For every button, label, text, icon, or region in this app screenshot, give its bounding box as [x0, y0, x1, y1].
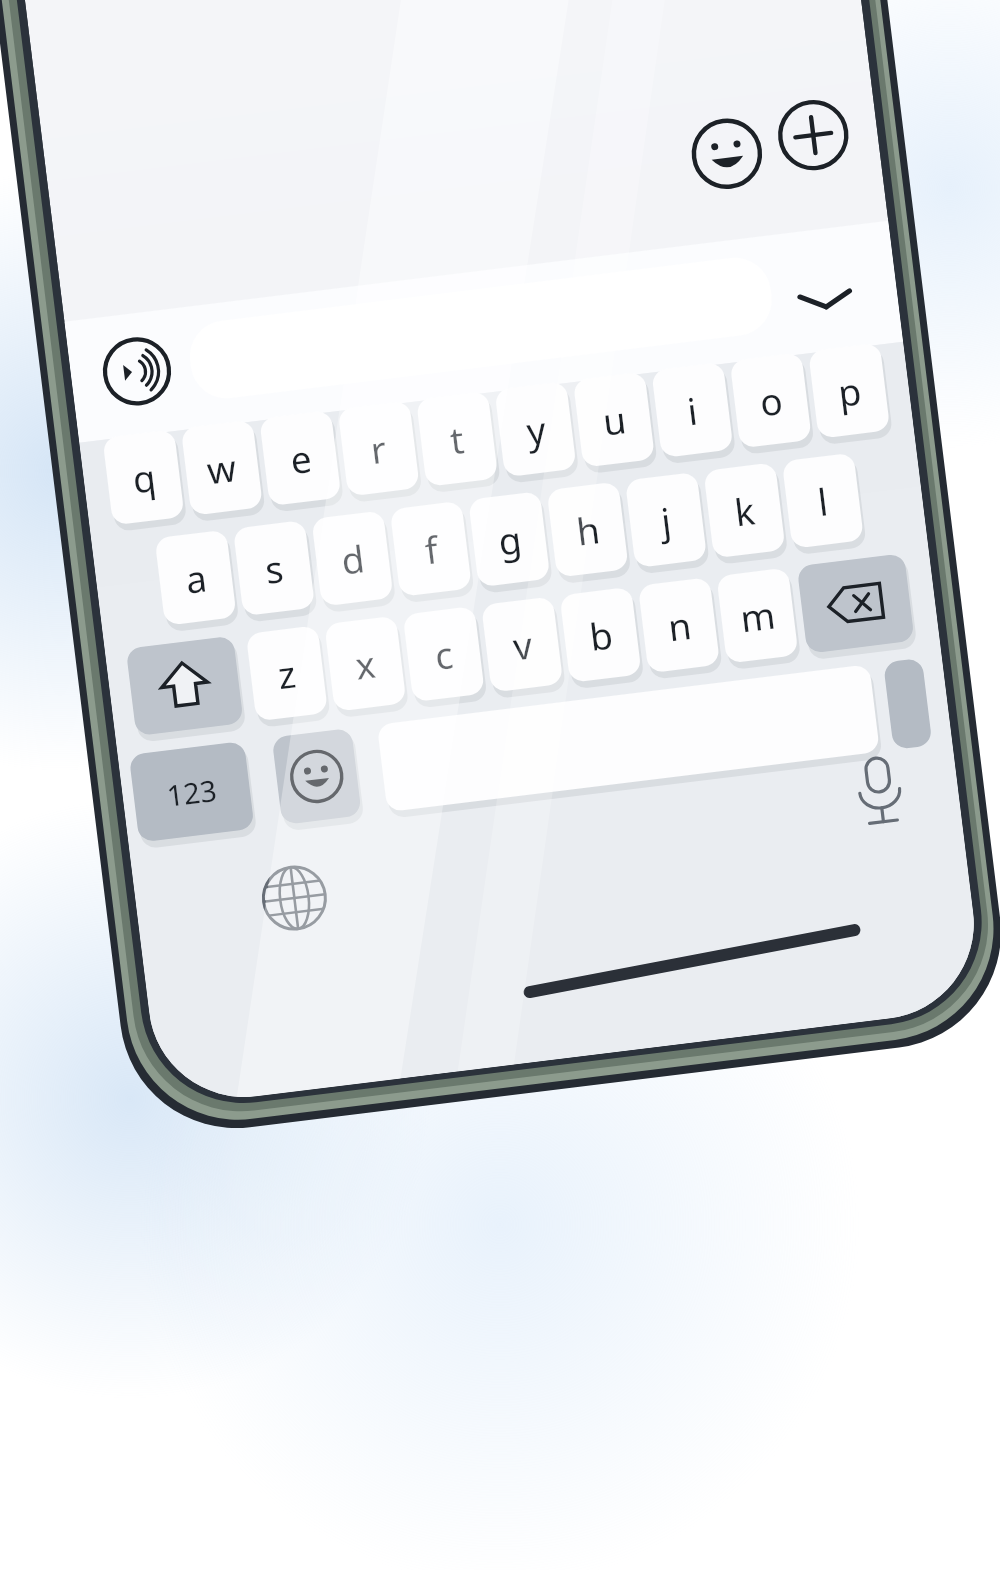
- button[interactable]: Chat screen with on-screen keyboard: [0, 0, 1000, 1570]
